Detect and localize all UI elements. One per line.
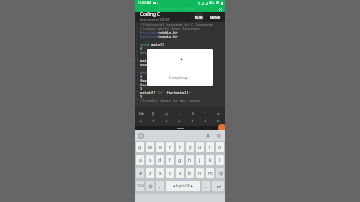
staticText: z [149, 170, 152, 177]
button[interactable]: ↓ [199, 117, 212, 124]
staticText: 5 [136, 38, 138, 42]
button[interactable]: l [216, 155, 224, 165]
button[interactable]: ; [173, 110, 186, 117]
button[interactable]: q [136, 142, 144, 152]
staticText: ↓ [204, 119, 207, 122]
button[interactable]: Search [216, 133, 222, 139]
staticText: . [205, 183, 207, 190]
button[interactable]: Voice input [205, 133, 211, 139]
staticText: ↺ [217, 112, 220, 115]
button[interactable]: i [206, 142, 214, 152]
staticText: Auto saved at 340338 [140, 18, 170, 22]
button[interactable]: s [146, 155, 154, 165]
staticText: o [218, 144, 222, 151]
staticText: Tab [139, 112, 144, 116]
staticText: ↑ [152, 119, 155, 122]
button[interactable]: ↑ [147, 117, 160, 124]
staticText: 16 [135, 82, 139, 86]
staticText: 9 [136, 54, 138, 58]
staticText: i++; [140, 82, 149, 86]
button[interactable]: Shift [136, 168, 144, 178]
button[interactable]: ?123 [136, 181, 144, 191]
button[interactable]: h [186, 155, 194, 165]
button[interactable]: t [176, 142, 184, 152]
staticText: Compiling... [169, 75, 191, 80]
button[interactable]: , [156, 181, 164, 191]
staticText: u [198, 144, 202, 151]
staticText: ◀ English (UK) ▶ [173, 184, 193, 188]
button[interactable]: Tab [135, 110, 147, 117]
button[interactable]: ' [199, 110, 212, 117]
staticText: k [209, 157, 212, 164]
button[interactable]: d [156, 155, 164, 165]
staticText: 19 [135, 94, 139, 98]
staticText: printf("%d",factorial); [140, 90, 191, 94]
staticText: ?123 [137, 184, 144, 188]
button[interactable]: f [166, 155, 174, 165]
staticText: 1 [136, 22, 138, 26]
staticText: x [159, 170, 162, 177]
button[interactable]: k [206, 155, 214, 165]
staticText: 15 [135, 78, 139, 82]
button[interactable]: u [196, 142, 204, 152]
staticText: 11 [135, 62, 139, 66]
staticText: 4G+ [209, 1, 215, 5]
button[interactable]: Emoji [146, 181, 154, 191]
staticText: e [159, 144, 162, 151]
button[interactable]: b [186, 168, 194, 178]
staticText: { [140, 46, 143, 50]
staticText: w [148, 144, 152, 151]
staticText: 4 [136, 34, 138, 38]
staticText: #include<stdio.h> [140, 30, 178, 34]
button[interactable]: ↻ [212, 117, 225, 124]
button[interactable]: e [156, 142, 164, 152]
staticText: y [189, 144, 192, 151]
staticText: factorial=factorial*i; [140, 78, 189, 82]
staticText: ↓ [165, 119, 168, 122]
button[interactable]: Enter [212, 181, 224, 191]
staticText: 8 [136, 50, 138, 54]
button[interactable]: MENU [210, 15, 221, 20]
button[interactable]: j [196, 155, 204, 165]
button[interactable]: o [216, 142, 224, 152]
button[interactable]: {} [147, 110, 160, 117]
staticText: ' [205, 112, 206, 116]
button[interactable]: . [202, 181, 210, 191]
button[interactable]: ↓ [160, 117, 173, 124]
button[interactable]: y [186, 142, 194, 152]
button[interactable]: v [176, 168, 184, 178]
button[interactable]: Clipboard [138, 133, 144, 139]
button[interactable]: RUN [194, 12, 204, 22]
staticText: int i=1,n,f=1; [140, 50, 171, 54]
button[interactable]: a [136, 155, 144, 165]
button[interactable]: Close ad [218, 7, 223, 12]
button[interactable]: ↑ [186, 117, 199, 124]
staticText: j [199, 157, 201, 164]
staticText: ↑ [191, 119, 194, 122]
staticText: 2 [136, 26, 138, 30]
button[interactable]: Backspace [216, 168, 224, 178]
button[interactable]: x [156, 168, 164, 178]
button[interactable]: Floating action [218, 124, 225, 132]
staticText: l [219, 157, 221, 164]
staticText: { [140, 74, 143, 78]
staticText: b [188, 170, 192, 177]
button[interactable]: ← [135, 117, 147, 124]
button[interactable]: z [146, 168, 154, 178]
button[interactable]: → [173, 117, 186, 124]
staticText: q [138, 144, 142, 151]
staticText: f [169, 157, 171, 164]
staticText: {} [152, 112, 155, 116]
button[interactable]: r [166, 142, 174, 152]
button[interactable]: () [186, 110, 199, 117]
button[interactable]: c [166, 168, 174, 178]
staticText: ↻ [217, 119, 220, 122]
staticText: } [140, 86, 143, 90]
button[interactable]: g [176, 155, 184, 165]
button[interactable]: ↺ [212, 110, 225, 117]
button[interactable]: n [196, 168, 204, 178]
button[interactable]: →| [160, 110, 173, 117]
button[interactable]: m [206, 168, 214, 178]
button[interactable]: w [146, 142, 154, 152]
button[interactable]: ◀ English (UK) ▶ [166, 181, 200, 191]
